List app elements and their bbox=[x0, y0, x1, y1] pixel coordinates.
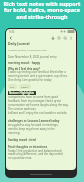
staticText: comparisons have to come from good bbox=[8, 95, 58, 99]
staticText: I woke up feeling a bit tired but lifted… bbox=[8, 70, 66, 74]
staticText: need to keep my phone away in the bbox=[8, 127, 55, 131]
staticText: Sunday mood : tired bbox=[8, 138, 36, 142]
staticText: feedback from my manager. Had a great bbox=[8, 99, 61, 103]
staticText: The sunrise walk was bbox=[8, 107, 36, 111]
staticText: Sun bbox=[10, 85, 15, 88]
staticText: morning. bbox=[8, 131, 21, 135]
staticText: Today I felt productive and balanced and bbox=[8, 149, 62, 153]
button[interactable]: Redo bbox=[56, 35, 62, 41]
staticText: brilliant and I enjoy the cool weather o… bbox=[8, 111, 68, 115]
staticText: morning stretch and a quiet warm cup of … bbox=[8, 74, 68, 78]
staticText: made a big difference, and the day ended bbox=[8, 152, 63, 156]
staticText: Happy bbox=[21, 85, 29, 88]
staticText: conversation with some laughs along the … bbox=[8, 103, 69, 107]
staticText: Why do I feel this way? bbox=[8, 67, 40, 71]
staticText: struggled to stay focused in meetings; bbox=[8, 123, 59, 127]
staticText: Dear November 8, 2020 journal entry bbox=[8, 55, 57, 59]
staticText: Rich text notes with support for bold, i… bbox=[0, 0, 84, 21]
button[interactable]: More options bbox=[68, 35, 74, 41]
staticText: Final thoughts or intentions bbox=[8, 145, 48, 149]
button[interactable]: Back bbox=[8, 35, 14, 41]
staticText: on a positive note. bbox=[8, 156, 33, 160]
staticText: 9:30 bbox=[9, 30, 15, 34]
button[interactable]: Sun bbox=[8, 84, 17, 89]
button[interactable]: Search bbox=[62, 35, 68, 41]
button[interactable]: Undo bbox=[50, 35, 56, 41]
staticText: One thing I am grateful for today bbox=[8, 78, 52, 82]
staticText: challenges or Lessons Learned today bbox=[8, 119, 60, 123]
staticText: morning mood : happy bbox=[8, 61, 41, 65]
staticText: Daily Journal bbox=[8, 41, 30, 46]
staticText: Nature Highlights bbox=[9, 91, 35, 95]
button[interactable]: Happy bbox=[19, 84, 31, 89]
staticText: Created Sunday, 8 November 2020 bbox=[8, 48, 47, 51]
